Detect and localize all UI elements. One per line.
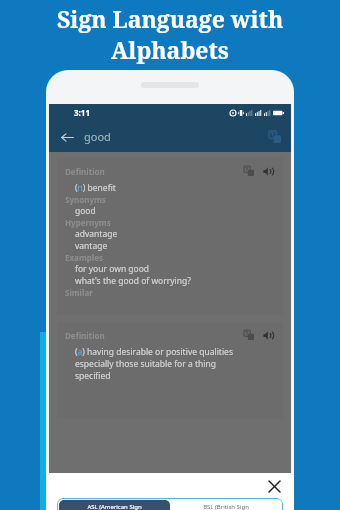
staticText: Alphabets — [111, 34, 229, 65]
staticText: good — [75, 205, 96, 217]
staticText: Similar — [65, 287, 93, 298]
button[interactable]: Translate — [242, 164, 256, 178]
staticText: Synonyms — [65, 194, 106, 205]
button[interactable]: ASL (American Sign Language) — [59, 500, 170, 510]
staticText: especially those suitable for a thing — [75, 358, 216, 370]
button[interactable]: Translate — [242, 328, 256, 342]
staticText: ASL (American Sign Language) — [87, 503, 142, 510]
staticText: Definition — [65, 330, 105, 341]
button[interactable]: Translate — [264, 126, 286, 148]
staticText: Sign Language with — [57, 3, 284, 34]
staticText: good — [84, 129, 111, 144]
staticText: BSL (British Sign Language) — [203, 503, 249, 510]
staticText: for your own good — [75, 263, 150, 275]
staticText: Examples — [65, 252, 103, 263]
button[interactable]: Close — [264, 476, 284, 496]
staticText: (a) having desirable or positive qualiti… — [75, 346, 233, 358]
button[interactable]: Back — [56, 126, 78, 148]
staticText: what's the good of worrying? — [75, 275, 191, 287]
staticText: (n) benefit — [75, 182, 116, 194]
staticText: specified — [75, 370, 111, 382]
staticText: Definition — [65, 166, 105, 177]
staticText: advantage — [75, 228, 118, 240]
button[interactable]: Definition — [57, 158, 283, 315]
button[interactable]: Speak — [261, 164, 275, 178]
staticText: vantage — [75, 240, 108, 252]
staticText: Hypernyms — [65, 217, 111, 228]
button[interactable]: Definition — [57, 322, 283, 418]
staticText: 3:11 — [74, 107, 90, 118]
button[interactable]: Speak — [261, 328, 275, 342]
button[interactable]: BSL (British Sign Language) — [170, 500, 281, 510]
